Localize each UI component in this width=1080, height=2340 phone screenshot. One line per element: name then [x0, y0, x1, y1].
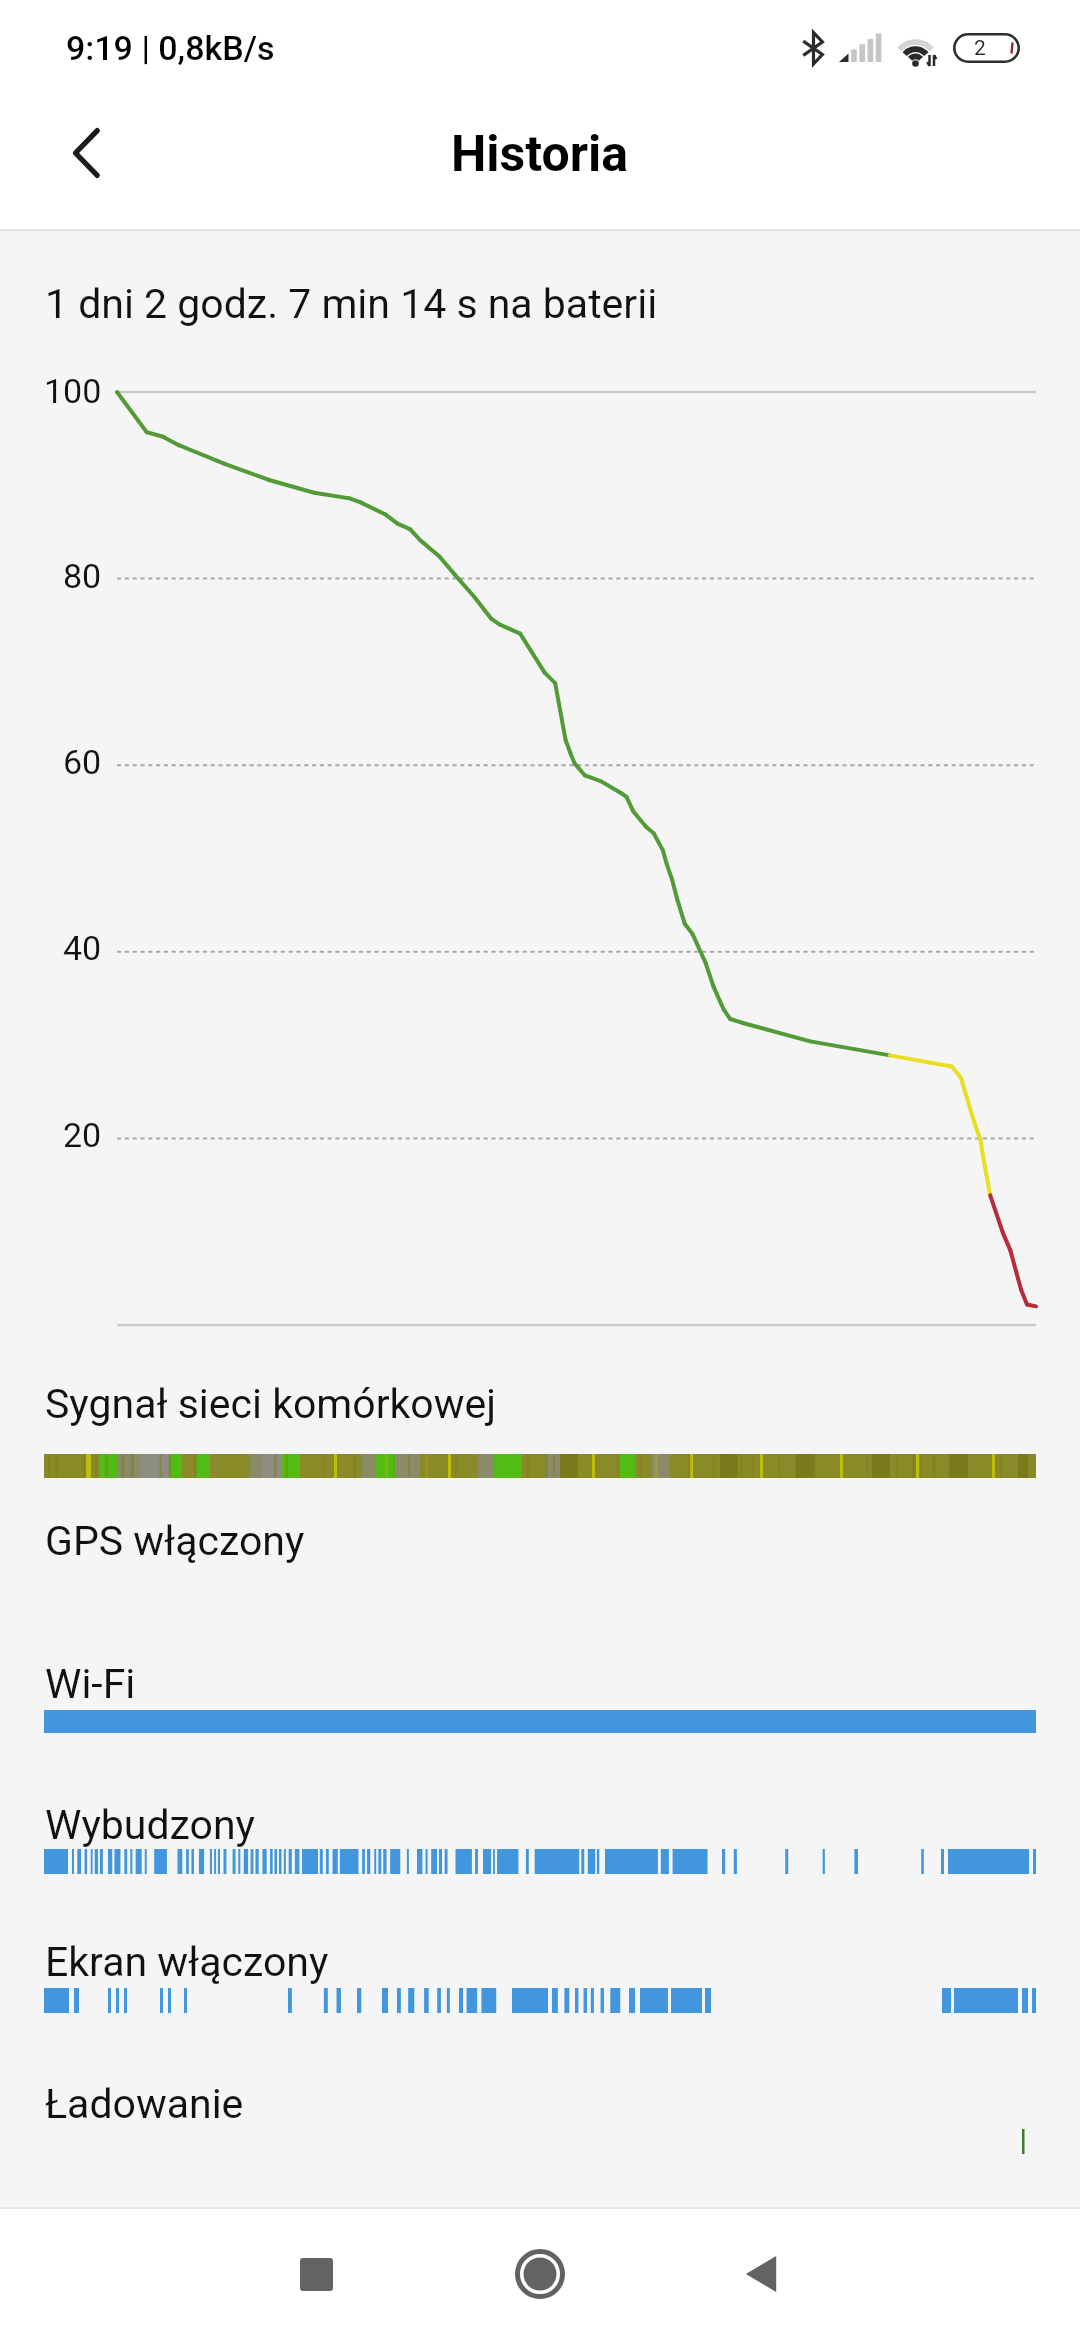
staticText: Sygnał sieci komórkowej	[45, 1380, 497, 1428]
button[interactable]: Recent apps	[261, 2219, 371, 2329]
staticText: 9:19 | 0,8kB/s	[66, 28, 275, 68]
button[interactable]: Home	[485, 2219, 595, 2329]
button[interactable]: Back	[39, 105, 135, 201]
staticText: 80	[63, 556, 102, 596]
staticText: 20	[63, 1115, 102, 1155]
staticText: 2	[974, 36, 986, 61]
staticText: Historia	[451, 125, 629, 184]
staticText: Wybudzony	[45, 1801, 255, 1849]
button[interactable]: Back	[710, 2219, 820, 2329]
staticText: 40	[63, 928, 102, 968]
staticText: Ładowanie	[45, 2080, 244, 2128]
staticText: Ekran włączony	[45, 1938, 329, 1986]
staticText: GPS włączony	[45, 1517, 305, 1565]
staticText: Wi-Fi	[45, 1660, 136, 1708]
staticText: 60	[63, 742, 102, 782]
staticText: 100	[44, 371, 102, 411]
staticText: 1 dni 2 godz. 7 min 14 s na baterii	[45, 280, 658, 328]
